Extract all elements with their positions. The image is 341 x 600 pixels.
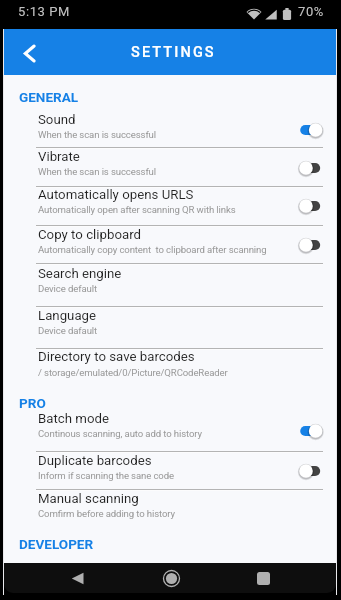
- staticText: When the scan is successful: [38, 166, 156, 177]
- staticText: Automatically opens URLS: [38, 187, 194, 203]
- staticText: Device default: [38, 283, 97, 294]
- staticText: Comfirm before adding to history: [38, 508, 175, 519]
- button[interactable]: Search engine: [4, 265, 336, 307]
- staticText: Copy to clipboard: [38, 227, 142, 243]
- staticText: Automatically copy content to clipboard …: [38, 244, 267, 255]
- button[interactable]: Sound: [4, 111, 336, 148]
- staticText: Vibrate: [38, 149, 80, 165]
- button[interactable]: Duplicate barcodes: [4, 452, 336, 490]
- staticText: / storage/emulated/0/Picture/QRCodeReade…: [38, 367, 228, 378]
- staticText: GENERAL: [19, 89, 79, 105]
- button[interactable]: Vibrate: [4, 148, 336, 187]
- button[interactable]: Back: [11, 35, 47, 71]
- button[interactable]: [297, 462, 325, 480]
- staticText: Continous scanning, auto add to history: [38, 428, 202, 439]
- button[interactable]: [297, 236, 325, 254]
- staticText: DEVELOPER: [19, 536, 94, 552]
- button[interactable]: [297, 121, 325, 139]
- button[interactable]: Copy to clipboard: [4, 226, 336, 264]
- staticText: Manual scanning: [38, 491, 139, 507]
- button[interactable]: Language: [4, 307, 336, 349]
- staticText: Directory to save barcodes: [38, 349, 195, 365]
- button[interactable]: Directory to save barcodes: [4, 348, 336, 388]
- staticText: Batch mode: [38, 411, 109, 427]
- button[interactable]: [297, 422, 325, 440]
- staticText: SETTINGS: [131, 44, 216, 61]
- staticText: PRO: [19, 395, 46, 411]
- button[interactable]: Home: [153, 563, 189, 593]
- button[interactable]: Manual scanning: [4, 490, 336, 530]
- staticText: Language: [38, 308, 97, 324]
- staticText: When the scan is successful: [38, 129, 156, 140]
- staticText: Automatically open after scanning QR wit…: [38, 204, 236, 215]
- staticText: Sound: [38, 112, 76, 128]
- staticText: Inform if scanning the sane code: [38, 470, 174, 481]
- button[interactable]: Automatically opens URLS: [4, 186, 336, 225]
- button[interactable]: [297, 197, 325, 215]
- button[interactable]: Back: [59, 563, 95, 593]
- staticText: Duplicate barcodes: [38, 453, 152, 469]
- button[interactable]: Recent apps: [245, 563, 281, 593]
- button[interactable]: Batch mode: [4, 410, 336, 452]
- staticText: Device dafault: [38, 325, 98, 336]
- staticText: 70%: [298, 4, 324, 19]
- staticText: Search engine: [38, 266, 122, 282]
- staticText: 5:13 PM: [18, 4, 71, 19]
- button[interactable]: [297, 159, 325, 177]
